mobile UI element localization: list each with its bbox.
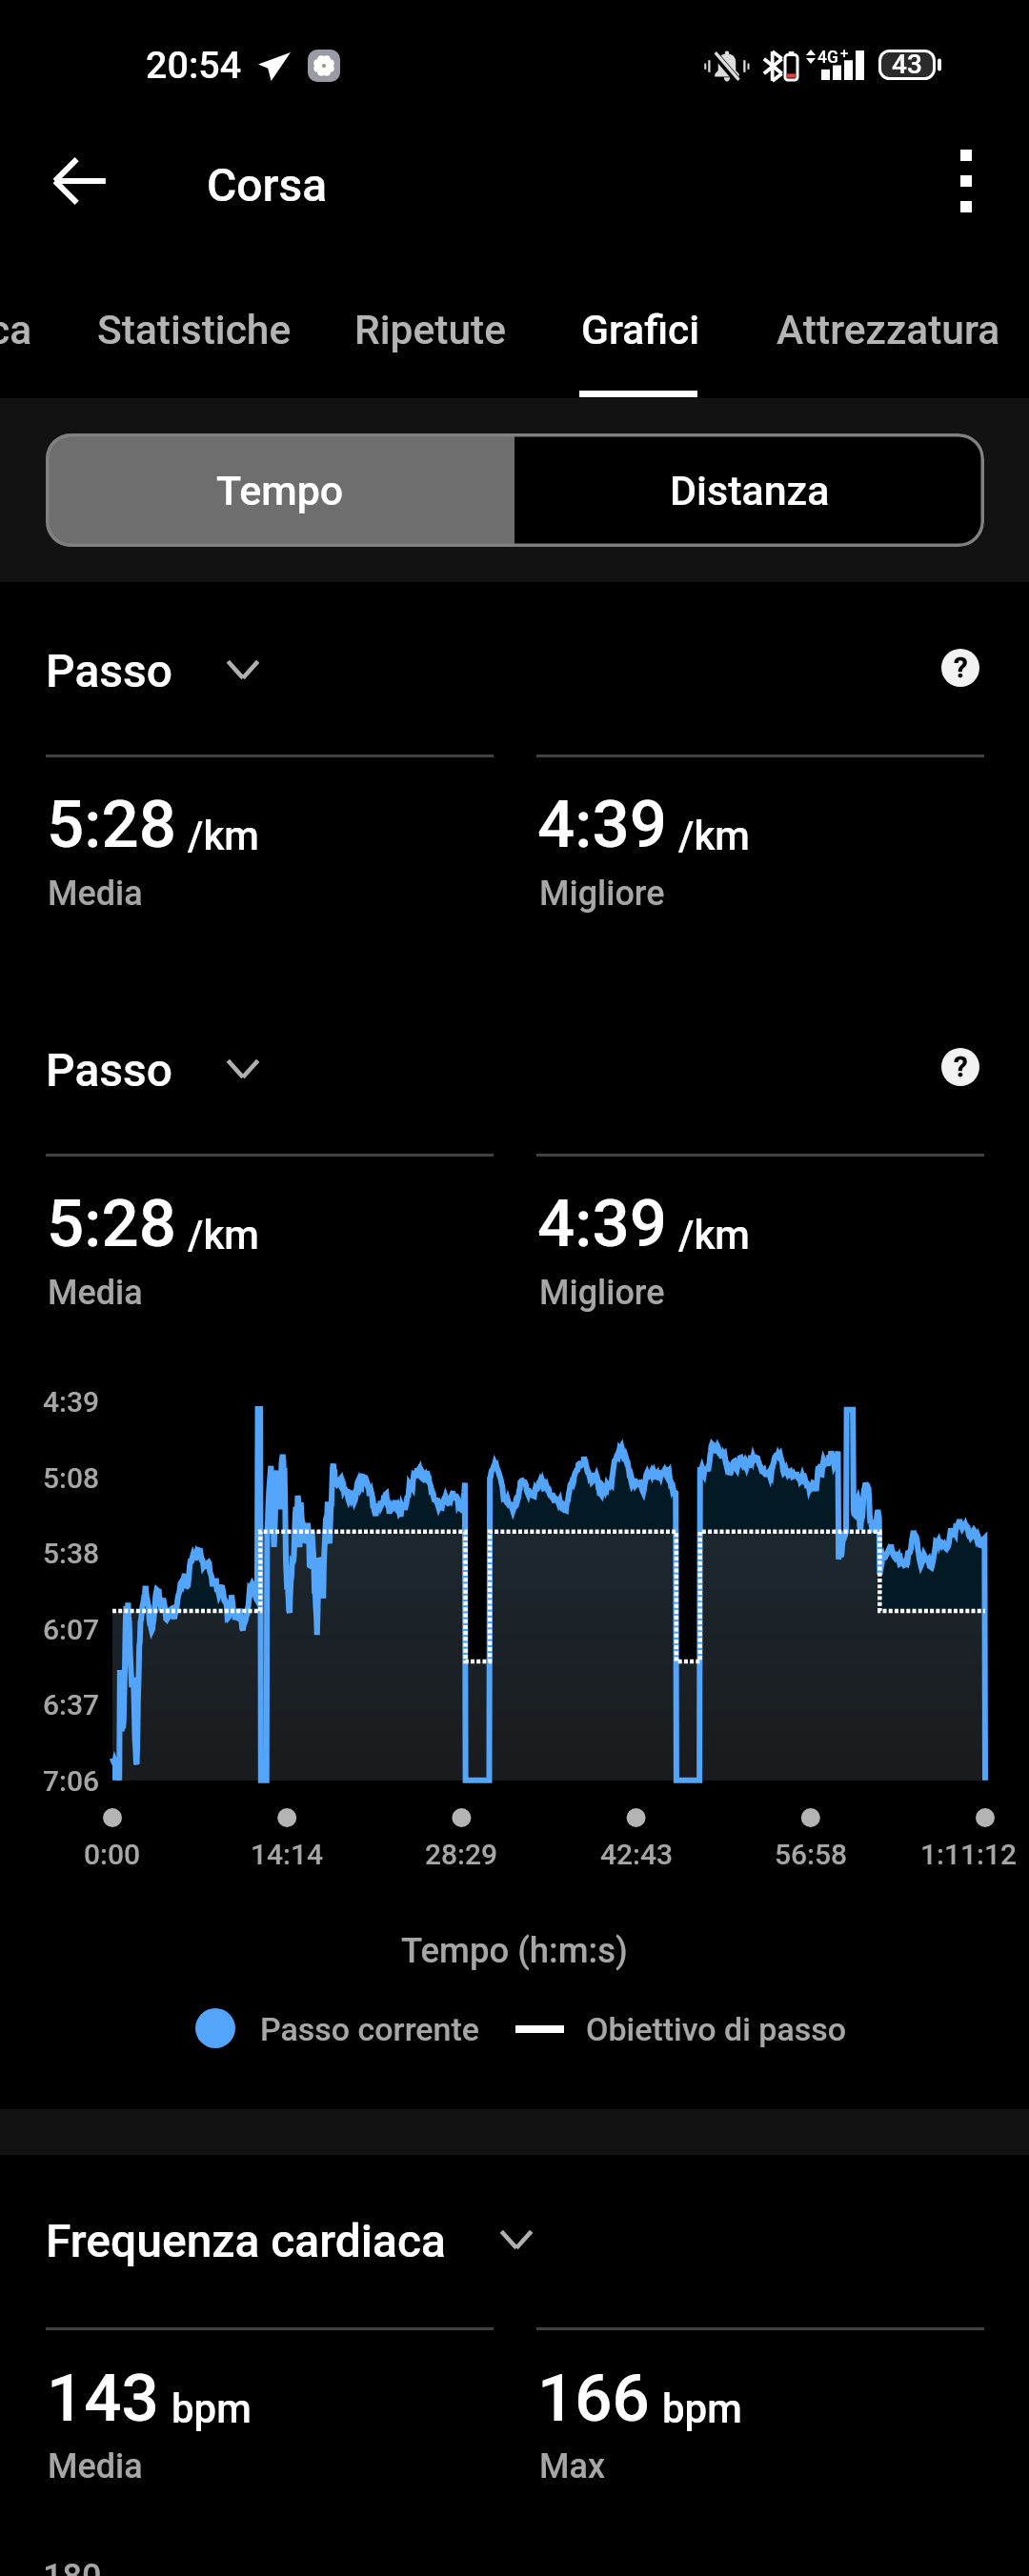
staticText: Ripetute: [354, 307, 506, 354]
button[interactable]: Help: [922, 1029, 999, 1105]
staticText: Max: [539, 2446, 605, 2486]
staticText: Obiettivo di passo: [586, 2010, 847, 2048]
staticText: 56:58: [775, 1838, 848, 1871]
staticText: Passo: [46, 644, 172, 697]
staticText: Media: [48, 2446, 143, 2486]
staticText: 5:08: [43, 1461, 100, 1495]
staticText: 4:39: [537, 1185, 667, 1262]
staticText: 5:28: [47, 786, 176, 863]
staticText: 6:37: [43, 1688, 100, 1721]
staticText: Media: [48, 1273, 143, 1313]
button[interactable]: Tempo: [46, 433, 514, 547]
button[interactable]: [534, 267, 745, 398]
staticText: 180: [43, 2557, 102, 2576]
button[interactable]: Back: [34, 135, 126, 227]
staticText: Migliore: [539, 1273, 665, 1313]
staticText: bpm: [662, 2385, 742, 2432]
staticText: 20:54: [146, 43, 242, 87]
staticText: +: [840, 45, 849, 62]
staticText: Grafici: [581, 307, 699, 354]
staticText: 4:39: [537, 786, 667, 863]
button[interactable]: More options: [920, 135, 1012, 227]
staticText: 14:14: [251, 1838, 324, 1871]
button[interactable]: Help: [922, 630, 999, 706]
staticText: 42:43: [600, 1838, 674, 1871]
staticText: ?: [954, 1050, 968, 1083]
staticText: 43: [892, 49, 922, 79]
staticText: 6:07: [43, 1613, 100, 1646]
button[interactable]: [50, 267, 146, 398]
staticText: /km: [188, 813, 259, 859]
button[interactable]: [729, 267, 1029, 398]
staticText: Frequenza cardiaca: [46, 2214, 446, 2267]
staticText: /km: [188, 1212, 259, 1258]
staticText: Passo: [46, 1043, 172, 1097]
staticText: /km: [678, 1212, 750, 1258]
staticText: 0:00: [84, 1838, 141, 1871]
button[interactable]: [307, 267, 553, 398]
staticText: Attrezzatura: [777, 307, 1000, 354]
staticText: ca: [0, 307, 32, 354]
staticText: 5:28: [47, 1185, 176, 1262]
staticText: 28:29: [425, 1838, 498, 1871]
staticText: /km: [678, 813, 750, 859]
staticText: 4G: [817, 48, 838, 68]
staticText: 4:39: [43, 1385, 100, 1419]
staticText: Distanza: [670, 467, 830, 514]
staticText: Statistiche: [97, 307, 292, 354]
button[interactable]: Passo: [38, 1028, 279, 1108]
staticText: 143: [47, 2360, 159, 2437]
staticText: 166: [537, 2360, 650, 2437]
button[interactable]: Passo: [38, 629, 279, 709]
staticText: 7:06: [43, 1764, 100, 1798]
staticText: Passo corrente: [260, 2010, 480, 2048]
staticText: Tempo: [216, 467, 344, 514]
staticText: Migliore: [539, 874, 665, 914]
staticText: Tempo (h:m:s): [401, 1930, 628, 1971]
staticText: bpm: [171, 2385, 252, 2432]
staticText: 5:38: [43, 1537, 100, 1570]
button[interactable]: Distanza: [514, 433, 984, 547]
staticText: ?: [954, 651, 968, 684]
staticText: 1:11:12: [920, 1838, 1018, 1871]
staticText: Corsa: [207, 158, 328, 211]
staticText: Media: [48, 874, 143, 914]
button[interactable]: [50, 267, 333, 398]
button[interactable]: Frequenza cardiaca: [38, 2199, 553, 2279]
